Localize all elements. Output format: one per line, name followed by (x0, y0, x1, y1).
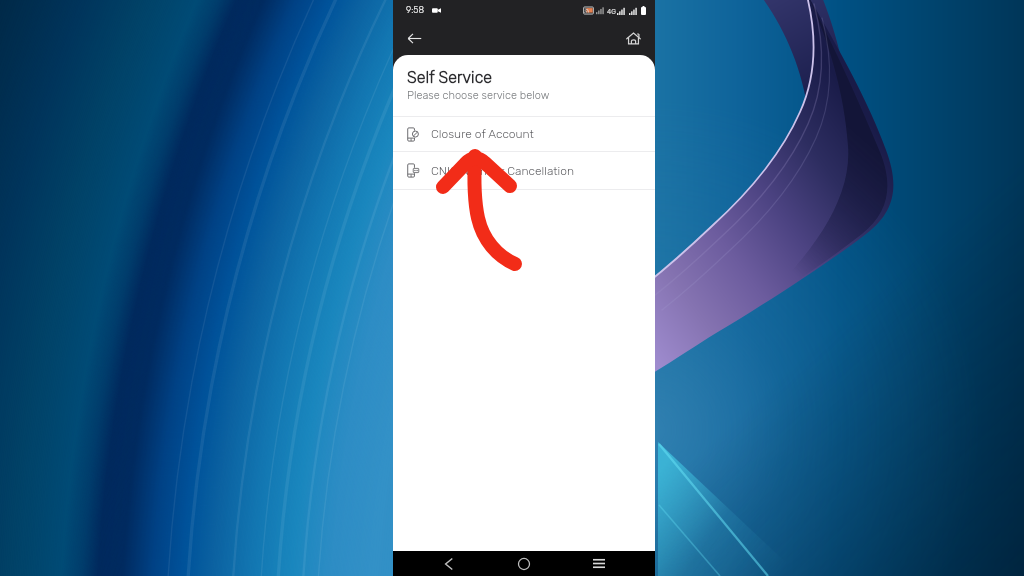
button[interactable]: Home (506, 551, 542, 576)
staticText: CNIC Number Cancellation (431, 164, 575, 178)
button[interactable]: Closure of Account (393, 117, 655, 151)
staticText: 9:58 (406, 5, 425, 16)
button[interactable]: Home (620, 25, 646, 51)
staticText: Please choose service below (407, 89, 550, 102)
button[interactable]: Back (401, 25, 427, 51)
button[interactable]: Back (430, 551, 466, 576)
staticText: 4G (607, 7, 616, 15)
staticText: Closure of Account (431, 127, 534, 141)
button[interactable]: CNIC Number Cancellation (393, 152, 655, 189)
staticText: Self Service (407, 68, 492, 87)
button[interactable]: Recent apps (581, 551, 617, 576)
